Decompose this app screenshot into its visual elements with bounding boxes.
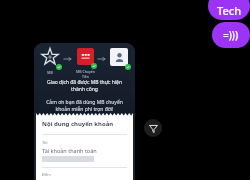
staticText: Giao dịch đã được MB thực hiện thành côn… [47, 79, 122, 93]
staticText: MB Chuyển Tiền [76, 69, 95, 79]
staticText: Tech [217, 3, 242, 18]
button[interactable]: Tech [208, 0, 250, 20]
staticText: Tài khoản thanh toán [42, 147, 97, 154]
staticText: =))) [223, 28, 239, 42]
button[interactable]: =))) [212, 22, 250, 48]
button[interactable]: Send [144, 119, 162, 137]
staticText: Cảm ơn bạn đã dùng MB chuyển khoản miễn … [46, 99, 123, 113]
staticText: MB [47, 70, 53, 75]
staticText: Đến: [42, 172, 51, 177]
staticText: Nội dung chuyển khoản [42, 120, 114, 128]
staticText: Từ: [42, 140, 48, 145]
